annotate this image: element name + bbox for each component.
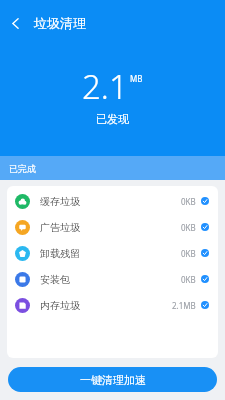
staticText: 安装包 (40, 273, 70, 286)
staticText: 2.1 (82, 64, 128, 109)
button[interactable]: 一键清理加速 (8, 367, 217, 392)
staticText: 广告垃圾 (40, 221, 80, 234)
button[interactable]: 广告垃圾 (7, 214, 218, 240)
staticText: 一键清理加速 (80, 373, 146, 387)
button[interactable]: 卸载残留 (7, 240, 218, 266)
staticText: 内存垃圾 (40, 299, 80, 312)
staticText: 2.1MB (172, 300, 196, 311)
staticText: 0KB (181, 196, 196, 207)
button[interactable]: Back (0, 8, 30, 38)
staticText: 垃圾清理 (34, 15, 86, 31)
staticText: 0KB (181, 222, 196, 233)
staticText: 已完成 (9, 163, 36, 174)
button[interactable]: 内存垃圾 (7, 292, 218, 318)
button[interactable]: 缓存垃圾 (7, 188, 218, 214)
button[interactable]: 安装包 (7, 266, 218, 292)
staticText: 0KB (181, 248, 196, 259)
staticText: 已发现 (96, 112, 129, 126)
staticText: 缓存垃圾 (40, 195, 80, 208)
staticText: 0KB (181, 274, 196, 285)
staticText: 卸载残留 (40, 247, 80, 260)
staticText: MB (130, 73, 143, 84)
